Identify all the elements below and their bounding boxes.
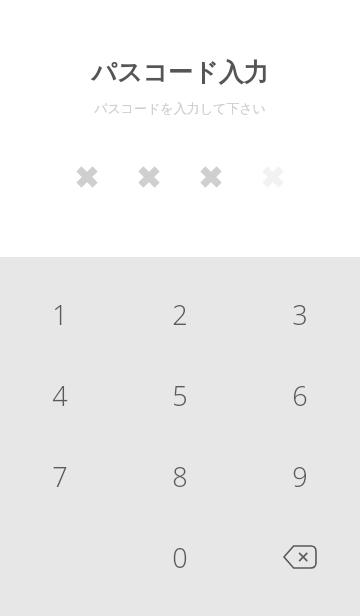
button[interactable]: 2: [120, 275, 240, 353]
staticText: 3: [292, 296, 308, 333]
button[interactable]: 6: [240, 356, 360, 434]
staticText: 0: [172, 539, 188, 576]
staticText: 7: [52, 458, 68, 495]
staticText: パスコードを入力して下さい: [94, 100, 266, 116]
staticText: 1: [52, 296, 68, 333]
staticText: パスコード入力: [91, 57, 269, 88]
button[interactable]: 9: [240, 437, 360, 515]
staticText: 6: [292, 377, 308, 414]
staticText: 5: [172, 377, 188, 414]
button[interactable]: 7: [0, 437, 120, 515]
staticText: 9: [292, 458, 308, 495]
button[interactable]: 0: [120, 518, 240, 596]
button[interactable]: Backspace: [240, 518, 360, 596]
staticText: 2: [172, 296, 188, 333]
button[interactable]: 1: [0, 275, 120, 353]
staticText: 4: [52, 377, 68, 414]
button[interactable]: 8: [120, 437, 240, 515]
button[interactable]: 4: [0, 356, 120, 434]
staticText: 8: [172, 458, 188, 495]
button[interactable]: 5: [120, 356, 240, 434]
button[interactable]: 3: [240, 275, 360, 353]
